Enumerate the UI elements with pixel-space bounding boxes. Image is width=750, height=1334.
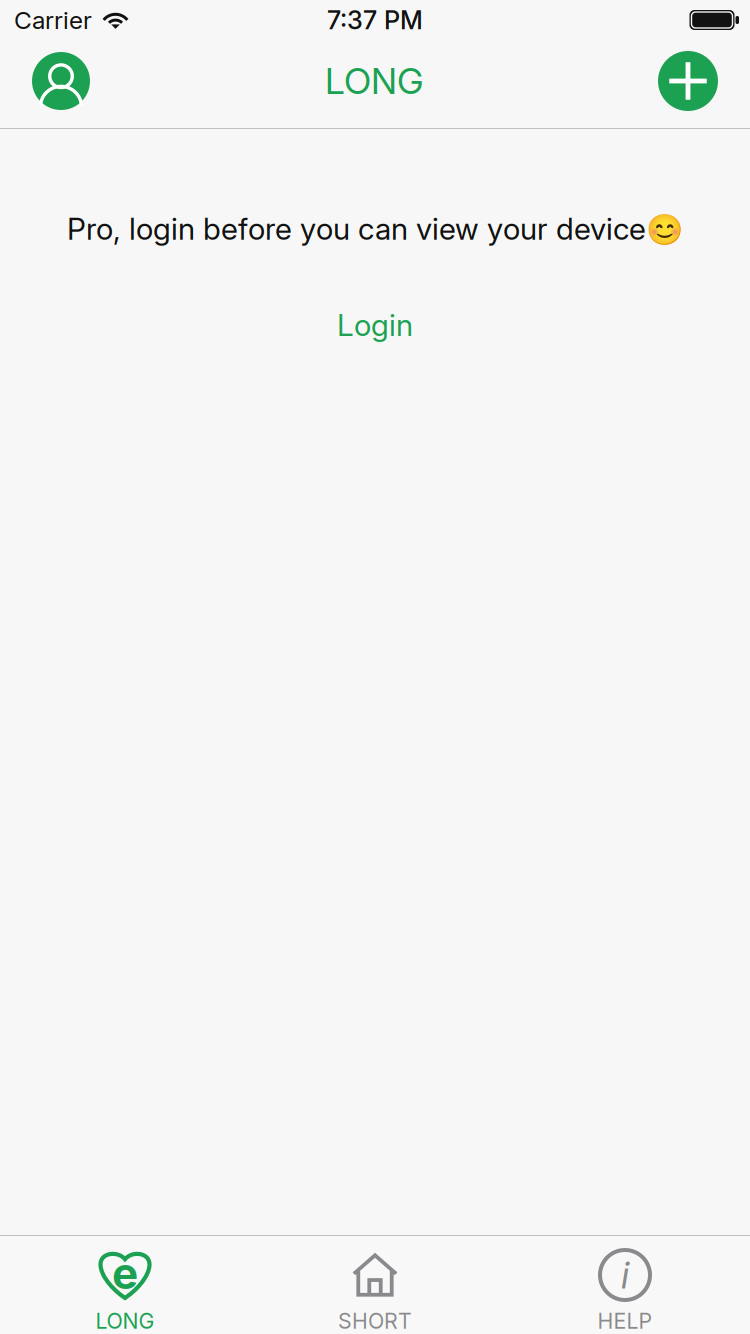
staticText: LONG — [325, 59, 423, 103]
staticText: SHORT — [338, 1308, 412, 1334]
staticText: Carrier — [14, 5, 92, 35]
button[interactable]: i — [500, 1236, 750, 1334]
staticText: 7:37 PM — [327, 5, 423, 35]
button[interactable]: e — [0, 1236, 250, 1334]
button[interactable]: SHORT — [250, 1236, 500, 1334]
staticText: Pro, login before you can view your devi… — [67, 211, 683, 247]
staticText: i — [621, 1252, 629, 1298]
staticText: Login — [337, 307, 413, 343]
staticText: LONG — [95, 1308, 154, 1334]
button[interactable]: Account — [32, 52, 90, 110]
button[interactable]: Add — [658, 51, 718, 111]
staticText: e — [112, 1246, 138, 1300]
staticText: HELP — [597, 1308, 652, 1334]
